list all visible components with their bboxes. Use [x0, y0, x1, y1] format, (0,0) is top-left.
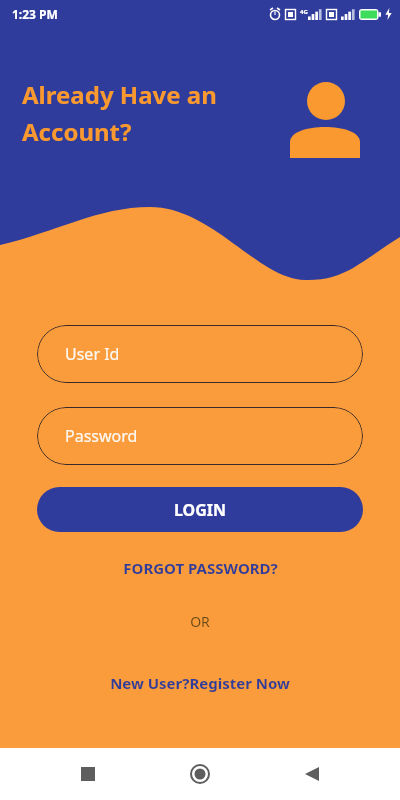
- staticText: 1:23 PM: [12, 6, 58, 22]
- staticText: Already Have an: [22, 78, 217, 111]
- staticText: FORGOT PASSWORD?: [123, 558, 278, 578]
- staticText: 4G: [300, 8, 308, 16]
- staticText: OR: [190, 612, 210, 631]
- button[interactable]: Password: [37, 407, 363, 465]
- button[interactable]: Recent apps: [64, 750, 112, 798]
- staticText: User Id: [65, 343, 120, 365]
- staticText: LOGIN: [174, 499, 227, 521]
- other: Account: [288, 78, 362, 160]
- button[interactable]: Back: [288, 750, 336, 798]
- button[interactable]: FORGOT PASSWORD?: [115, 554, 286, 582]
- button[interactable]: Home: [176, 750, 224, 798]
- staticText: Password: [65, 425, 138, 447]
- button[interactable]: User Id: [37, 325, 363, 383]
- staticText: New User?Register Now: [110, 673, 290, 693]
- staticText: Account?: [22, 115, 132, 148]
- button[interactable]: LOGIN: [37, 487, 363, 532]
- button[interactable]: New User?Register Now: [102, 669, 298, 697]
